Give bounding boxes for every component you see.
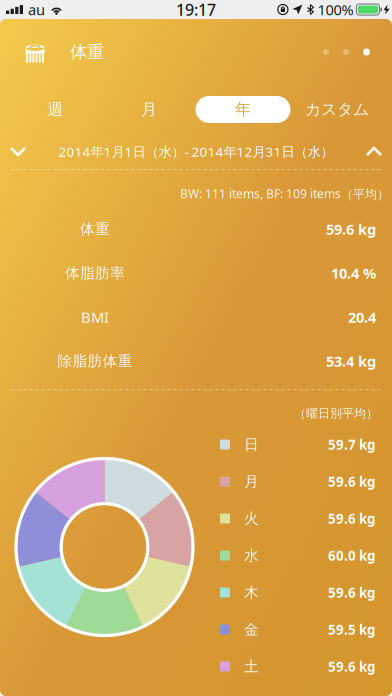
button[interactable]: Next period <box>356 134 392 168</box>
staticText: 20.4 <box>348 307 376 327</box>
staticText: 100% <box>317 0 353 19</box>
staticText: 60.0 kg <box>328 547 375 564</box>
staticText: 59.6 kg <box>328 584 375 601</box>
staticText: 59.6 kg <box>328 473 375 490</box>
staticText: 59.6 kg <box>326 219 376 239</box>
staticText: 19:17 <box>176 0 216 20</box>
staticText: 火 <box>244 509 259 527</box>
staticText: 53.4 kg <box>326 351 376 371</box>
staticText: au <box>28 0 45 19</box>
staticText: 月 <box>244 472 259 490</box>
staticText: 体重 <box>80 220 110 238</box>
staticText: 金 <box>244 620 259 638</box>
staticText: 週 <box>47 100 63 119</box>
button[interactable]: カスタム <box>290 92 384 126</box>
staticText: 体重 <box>70 41 104 63</box>
button[interactable]: 週 <box>8 92 102 126</box>
staticText: 59.6 kg <box>328 510 375 527</box>
staticText: BW: 111 items, BF: 109 items（平均） <box>180 185 389 201</box>
staticText: 59.5 kg <box>328 621 375 638</box>
staticText: 土 <box>244 657 259 675</box>
staticText: 年 <box>235 100 251 119</box>
button[interactable]: Previous period <box>0 134 36 168</box>
staticText: 2014年1月1日（水）- 2014年12月31日（水） <box>58 143 333 160</box>
button[interactable]: 月 <box>102 92 196 126</box>
button[interactable]: 年 <box>196 92 290 126</box>
staticText: 59.7 kg <box>328 436 375 453</box>
staticText: 10.4 % <box>331 263 376 283</box>
staticText: 除脂肪体重 <box>57 352 132 370</box>
staticText: カスタム <box>305 100 369 119</box>
staticText: 木 <box>244 583 259 601</box>
staticText: 月 <box>141 100 157 119</box>
staticText: （曜日別平均） <box>294 406 378 421</box>
staticText: 日 <box>244 435 259 453</box>
staticText: 水 <box>244 546 259 564</box>
staticText: BMI <box>81 307 109 327</box>
staticText: 59.6 kg <box>328 658 375 675</box>
staticText: 体脂肪率 <box>65 264 125 282</box>
